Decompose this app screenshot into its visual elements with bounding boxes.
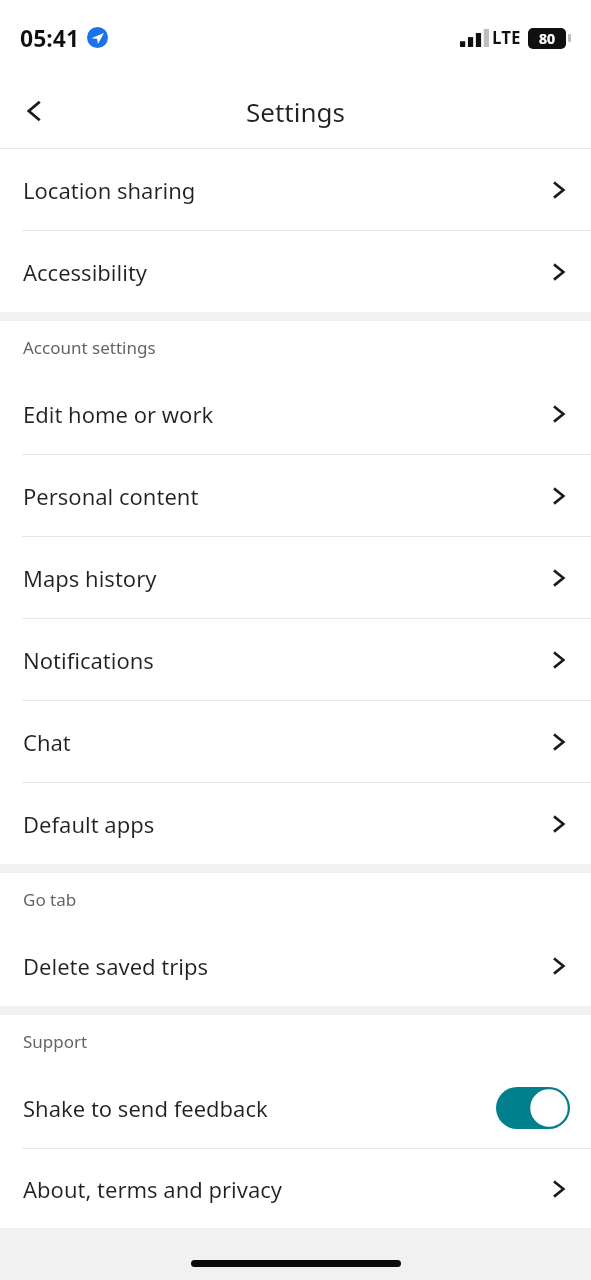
button[interactable]: Chat [0,701,591,782]
button[interactable]: Shake to send feedback [0,1067,591,1148]
staticText: Account settings [23,336,156,359]
staticText: Location sharing [23,175,549,205]
staticText: Delete saved trips [23,951,549,981]
staticText: Shake to send feedback [23,1093,496,1123]
staticText: Personal content [23,481,549,511]
staticText: Notifications [23,645,549,675]
button[interactable]: Location sharing [0,149,591,230]
button[interactable]: Notifications [0,619,591,700]
staticText: 05:41 [20,22,80,53]
button[interactable]: Default apps [0,783,591,864]
button[interactable]: Personal content [0,455,591,536]
staticText: Go tab [23,888,77,911]
staticText: Support [23,1030,88,1053]
staticText: LTE [492,26,521,49]
button[interactable]: Edit home or work [0,373,591,454]
staticText: Maps history [23,563,549,593]
staticText: Accessibility [23,257,549,287]
staticText: Settings [246,94,345,129]
staticText: Edit home or work [23,399,549,429]
staticText: 80 [539,29,556,48]
button[interactable]: Maps history [0,537,591,618]
staticText: Chat [23,727,549,757]
staticText: About, terms and privacy [23,1174,549,1204]
button[interactable]: About, terms and privacy [0,1149,591,1228]
button[interactable]: Delete saved trips [0,925,591,1006]
staticText: Default apps [23,809,549,839]
button[interactable]: Accessibility [0,231,591,312]
button[interactable]: Back [10,87,58,135]
